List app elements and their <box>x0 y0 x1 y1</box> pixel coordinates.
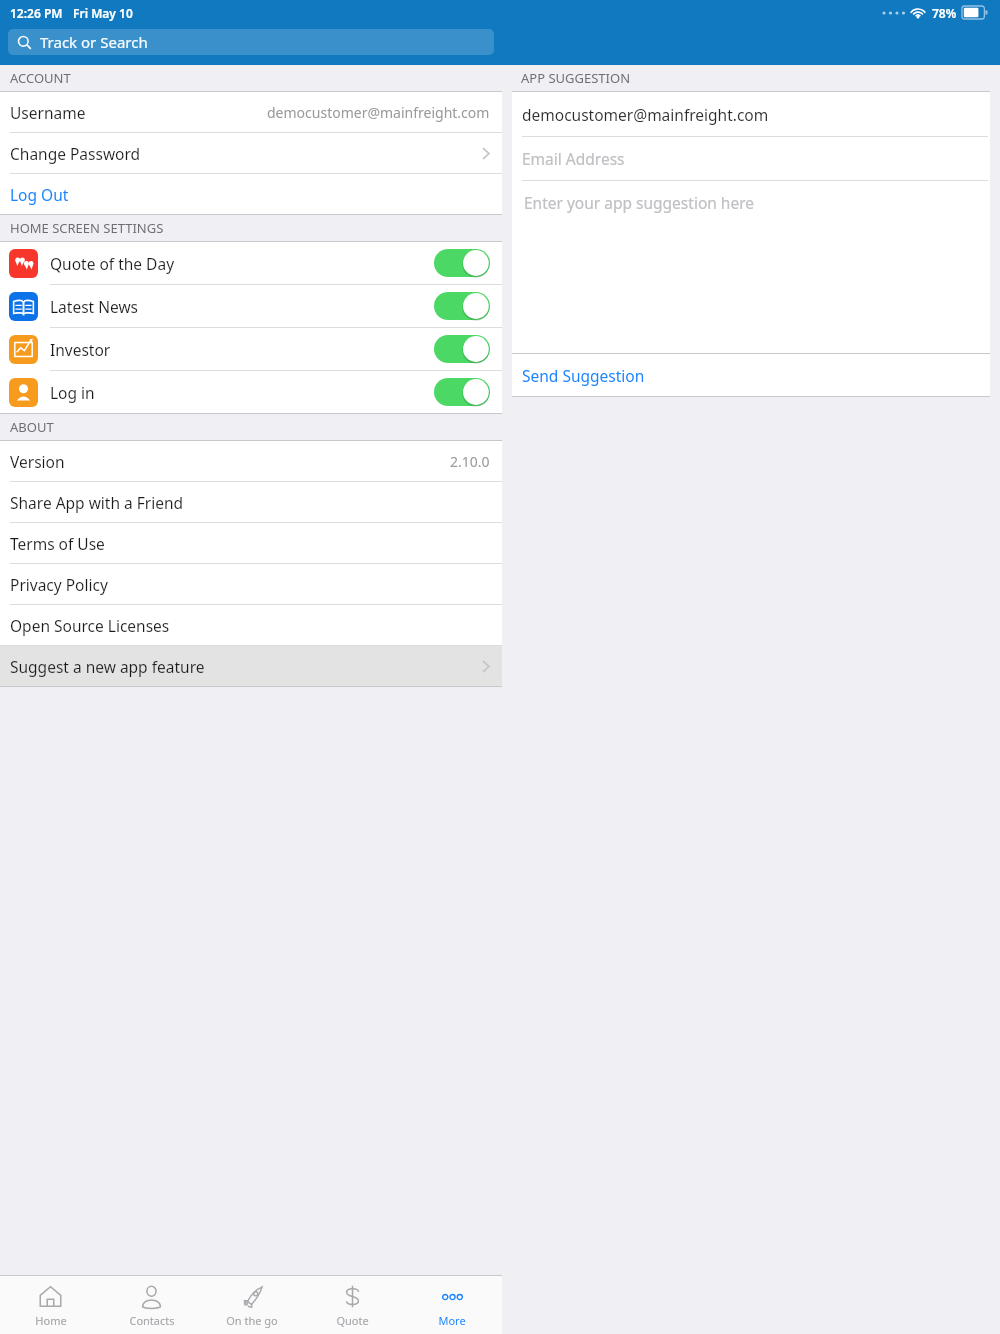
staticText: Investor <box>50 339 111 360</box>
staticText: On the go <box>226 1313 278 1328</box>
staticText: 2.10.0 <box>450 452 490 471</box>
staticText: Log Out <box>10 184 69 205</box>
staticText: Latest News <box>50 296 139 317</box>
staticText: 12:26 PM <box>10 5 63 21</box>
button[interactable]: Privacy Policy <box>0 564 502 604</box>
button[interactable]: More <box>402 1276 502 1334</box>
button[interactable]: democustomer@mainfreight.com <box>512 92 990 136</box>
staticText: Change Password <box>10 143 141 164</box>
button[interactable]: Quote <box>302 1276 402 1334</box>
staticText: Privacy Policy <box>10 574 108 595</box>
staticText: democustomer@mainfreight.com <box>522 104 769 125</box>
button[interactable]: Investor <box>0 328 502 370</box>
staticText: Home <box>35 1313 67 1328</box>
staticText: Terms of Use <box>10 533 105 554</box>
button[interactable]: Username <box>0 92 502 132</box>
button[interactable]: Contacts <box>101 1276 202 1334</box>
button[interactable]: Send Suggestion <box>512 354 990 396</box>
button[interactable]: Log in <box>0 371 502 413</box>
button[interactable]: Log Out <box>0 174 502 214</box>
button[interactable]: Quote of the Day <box>0 242 502 284</box>
button[interactable]: Enter your app suggestion here <box>512 181 990 353</box>
button[interactable]: Email Address <box>512 137 990 180</box>
button[interactable]: Toggle <box>434 334 490 364</box>
staticText: APP SUGGESTION <box>521 69 631 87</box>
button[interactable]: Share App with a Friend <box>0 482 502 522</box>
button[interactable]: Open Source Licenses <box>0 605 502 645</box>
staticText: Log in <box>50 382 95 403</box>
button[interactable]: Suggest a new app feature <box>0 646 502 686</box>
staticText: Fri May 10 <box>73 5 133 21</box>
staticText: Send Suggestion <box>522 365 645 386</box>
button[interactable]: Terms of Use <box>0 523 502 563</box>
staticText: ACCOUNT <box>10 69 71 87</box>
button[interactable]: Toggle <box>434 248 490 278</box>
button[interactable]: Version <box>0 441 502 481</box>
button[interactable]: On the go <box>202 1276 302 1334</box>
button[interactable]: Latest News <box>0 285 502 327</box>
staticText: Contacts <box>129 1313 175 1328</box>
button[interactable]: Toggle <box>434 377 490 407</box>
button[interactable]: Toggle <box>434 291 490 321</box>
staticText: Enter your app suggestion here <box>524 192 755 213</box>
staticText: Track or Search <box>40 32 148 52</box>
staticText: 78% <box>932 5 957 21</box>
staticText: Quote <box>336 1313 369 1328</box>
staticText: ABOUT <box>10 418 54 436</box>
button[interactable]: Change Password <box>0 133 502 173</box>
staticText: democustomer@mainfreight.com <box>267 103 490 122</box>
staticText: Quote of the Day <box>50 253 175 274</box>
button[interactable]: Home <box>0 1276 101 1334</box>
staticText: Version <box>10 451 65 472</box>
staticText: Open Source Licenses <box>10 615 170 636</box>
staticText: Share App with a Friend <box>10 492 184 513</box>
staticText: More <box>438 1313 466 1328</box>
staticText: Email Address <box>522 148 625 169</box>
staticText: Suggest a new app feature <box>10 656 205 677</box>
staticText: HOME SCREEN SETTINGS <box>10 219 164 237</box>
button[interactable]: Track or Search <box>8 29 494 55</box>
staticText: Username <box>10 102 86 123</box>
